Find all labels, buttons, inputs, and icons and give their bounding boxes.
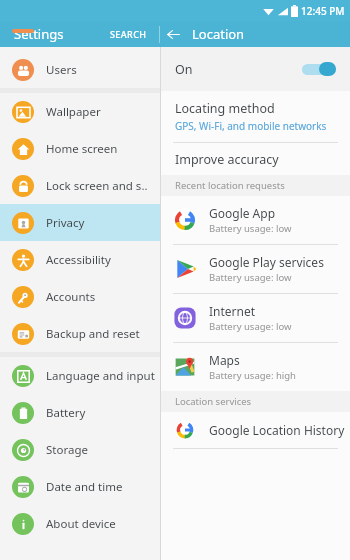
button[interactable]: Home screen — [0, 130, 160, 167]
staticText: Maps — [209, 352, 240, 368]
staticText: Accounts — [46, 289, 96, 305]
button[interactable]: SEARCH — [104, 24, 153, 44]
button[interactable]: Lock screen and s.. — [0, 167, 160, 204]
button[interactable]: Settings — [14, 25, 64, 43]
staticText: Wallpaper — [46, 104, 101, 120]
staticText: Language and input — [46, 368, 155, 384]
staticText: Users — [46, 62, 77, 78]
staticText: About device — [46, 516, 116, 532]
staticText: Lock screen and s.. — [46, 178, 148, 194]
staticText: Internet — [209, 303, 256, 319]
staticText: Battery usage: low — [209, 222, 292, 235]
staticText: GPS, Wi-Fi, and mobile networks — [175, 119, 327, 133]
staticText: Accessibility — [46, 252, 111, 268]
button[interactable]: Privacy — [0, 204, 160, 241]
button[interactable]: Accessibility — [0, 241, 160, 278]
button[interactable]: Internet — [161, 294, 350, 342]
staticText: On — [175, 61, 193, 78]
staticText: Backup and reset — [46, 326, 140, 342]
staticText: Battery usage: high — [209, 369, 296, 382]
staticText: Date and time — [46, 479, 123, 495]
staticText: Battery usage: low — [209, 271, 292, 284]
staticText: Battery — [46, 405, 86, 421]
staticText: Recent location requests — [175, 179, 285, 192]
staticText: Location — [192, 25, 245, 43]
button[interactable]: Maps — [161, 343, 350, 391]
button[interactable]: About device — [0, 505, 160, 542]
staticText: Improve accuracy — [175, 151, 279, 168]
staticText: Locating method — [175, 100, 275, 117]
staticText: Google App — [209, 205, 276, 221]
button[interactable]: Accounts — [0, 278, 160, 315]
staticText: Location services — [175, 395, 252, 408]
staticText: Home screen — [46, 141, 118, 157]
button[interactable]: Location toggle — [302, 62, 336, 76]
button[interactable]: Google Location History — [161, 412, 350, 448]
staticText: 12:45 PM — [301, 4, 345, 18]
staticText: Privacy — [46, 215, 85, 231]
button[interactable]: On — [161, 47, 350, 91]
button[interactable]: Backup and reset — [0, 315, 160, 352]
button[interactable]: Date and time — [0, 468, 160, 505]
button[interactable]: Improve accuracy — [161, 143, 350, 175]
button[interactable]: Locating method — [161, 91, 350, 142]
staticText: Battery usage: low — [209, 320, 292, 333]
staticText: Google Location History — [209, 422, 345, 438]
button[interactable]: Language and input — [0, 357, 160, 394]
button[interactable]: Google App — [161, 196, 350, 244]
button[interactable]: Users — [0, 51, 160, 88]
staticText: Storage — [46, 442, 88, 458]
button[interactable]: Battery — [0, 394, 160, 431]
button[interactable]: Storage — [0, 431, 160, 468]
staticText: Google Play services — [209, 254, 324, 270]
button[interactable]: Google Play services — [161, 245, 350, 293]
button[interactable]: Back — [160, 21, 186, 47]
button[interactable]: Wallpaper — [0, 93, 160, 130]
